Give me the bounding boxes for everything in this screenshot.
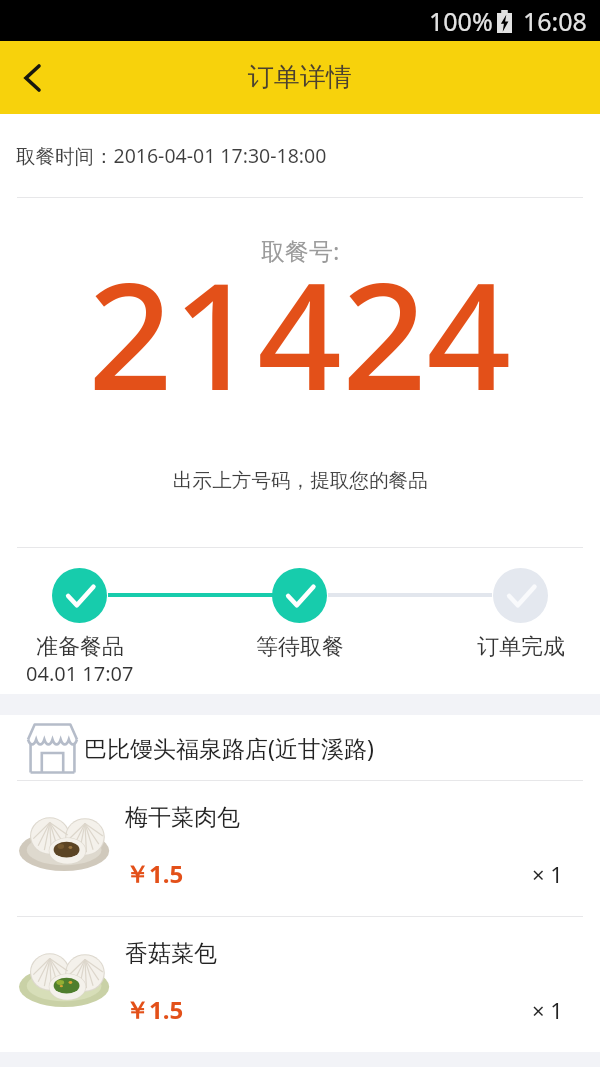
staticText: 香菇菜包 [125, 939, 217, 968]
button[interactable]: 梅干菜肉包 [0, 780, 600, 916]
staticText: × 1 [532, 995, 563, 1025]
staticText: 04.01 17:07 [26, 660, 134, 687]
button[interactable]: 香菇菜包 [0, 916, 600, 1052]
staticText: 订单完成 [477, 633, 565, 661]
staticText: 巴比馒头福泉路店(近甘溪路) [84, 732, 374, 763]
staticText: 100% [429, 4, 493, 38]
staticText: 等待取餐 [256, 633, 344, 661]
staticText: 21424 [88, 232, 512, 434]
staticText: 取餐时间：2016-04-01 17:30-18:00 [16, 142, 327, 169]
staticText: 准备餐品 [36, 633, 124, 661]
staticText: 取餐号: [261, 234, 340, 267]
staticText: 16:08 [523, 4, 587, 38]
staticText: ￥1.5 [125, 993, 184, 1026]
staticText: 梅干菜肉包 [125, 803, 240, 832]
staticText: 出示上方号码，提取您的餐品 [173, 468, 428, 493]
button[interactable]: 巴比馒头福泉路店(近甘溪路) [0, 715, 600, 780]
staticText: × 1 [532, 859, 563, 889]
staticText: ￥1.5 [125, 857, 184, 890]
button[interactable]: Back [0, 41, 62, 114]
staticText: 订单详情 [248, 61, 352, 94]
